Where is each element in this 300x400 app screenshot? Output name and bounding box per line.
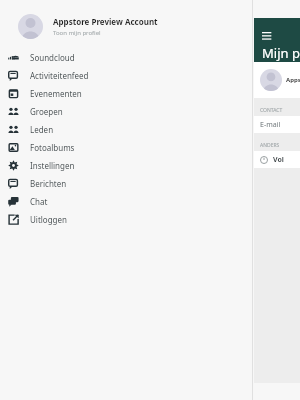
button[interactable]: Evenementen (0, 84, 252, 102)
button[interactable]: Apps (254, 62, 300, 98)
staticText: Groepen (30, 106, 63, 117)
staticText: Activiteitenfeed (30, 70, 89, 81)
staticText: ANDERS (260, 142, 280, 149)
button[interactable]: Instellingen (0, 156, 252, 174)
staticText: Appstore Preview Account (53, 16, 158, 27)
button[interactable]: E-mail (254, 116, 300, 133)
staticText: Soundcloud (30, 52, 75, 63)
staticText: Instellingen (30, 160, 75, 171)
button[interactable]: Soundcloud (0, 48, 252, 66)
button[interactable]: Groepen (0, 102, 252, 120)
button[interactable]: Appstore Preview Account (0, 10, 252, 42)
staticText: Vol (273, 155, 284, 165)
staticText: CONTACT (260, 107, 283, 114)
staticText: Fotoalbums (30, 142, 75, 153)
button[interactable]: Chat (0, 192, 252, 210)
button[interactable]: Menu (262, 31, 274, 43)
staticText: Evenementen (30, 88, 82, 99)
staticText: Mijn pr (262, 44, 300, 62)
staticText: Leden (30, 124, 54, 135)
button[interactable]: Vol (254, 151, 300, 168)
button[interactable]: Activiteitenfeed (0, 66, 252, 84)
staticText: Toon mijn profiel (53, 29, 101, 37)
staticText: Chat (30, 196, 48, 207)
staticText: E-mail (260, 120, 281, 130)
button[interactable]: Fotoalbums (0, 138, 252, 156)
staticText: Berichten (30, 178, 67, 189)
button[interactable]: Uitloggen (0, 210, 252, 228)
button[interactable]: Leden (0, 120, 252, 138)
staticText: Apps (286, 76, 300, 84)
button[interactable]: Berichten (0, 174, 252, 192)
staticText: Uitloggen (30, 214, 67, 225)
